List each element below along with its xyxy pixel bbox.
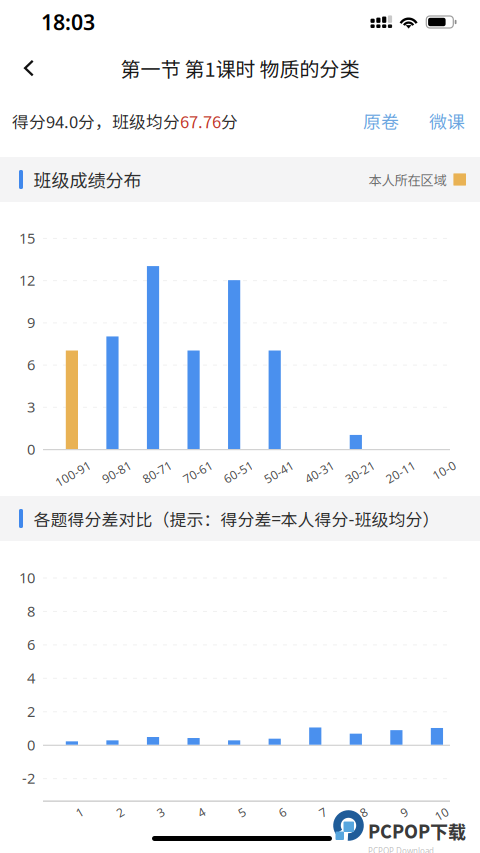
staticText: 0 [27, 439, 35, 459]
staticText: 20-11 [385, 467, 417, 483]
staticText: 70-61 [183, 467, 215, 483]
staticText: 6 [27, 355, 35, 374]
staticText: 50-41 [264, 467, 296, 483]
staticText: PCPOP Download [368, 846, 434, 853]
staticText: 微课 [429, 108, 465, 134]
staticText: PCPOP下载 [368, 817, 466, 844]
staticText: 9 [27, 313, 35, 332]
button[interactable]: 微课 [429, 109, 465, 133]
staticText: 4 [27, 668, 35, 688]
staticText: 80-71 [142, 467, 174, 483]
staticText: 67.76 [180, 109, 221, 133]
staticText: 3 [158, 807, 165, 823]
staticText: 30-21 [345, 467, 377, 483]
staticText: 3 [27, 397, 35, 417]
staticText: 6 [280, 807, 287, 823]
staticText: 90-81 [101, 467, 133, 483]
staticText: 分 [221, 109, 238, 133]
staticText: 本人所在区域 [368, 170, 446, 189]
staticText: 40-31 [304, 467, 336, 483]
staticText: 第一节 第1课时 物质的分类 [120, 53, 359, 82]
staticText: 各题得分差对比（提示：得分差=本人得分-班级均分） [33, 506, 439, 531]
staticText: 班级均分 [112, 109, 180, 133]
staticText: 9 [401, 807, 408, 823]
staticText: 10 [435, 807, 449, 823]
staticText: 0 [27, 735, 35, 754]
staticText: 10-0 [433, 467, 458, 483]
staticText: 原卷 [363, 108, 399, 134]
staticText: 100-91 [54, 467, 93, 483]
button[interactable]: 原卷 [363, 109, 399, 133]
staticText: 8 [27, 601, 35, 621]
staticText: 7 [320, 807, 327, 823]
staticText: 15 [19, 228, 35, 248]
staticText: 4 [199, 807, 206, 823]
staticText: 10 [19, 568, 35, 587]
staticText: 2 [27, 701, 35, 721]
staticText: 18:03 [41, 8, 95, 36]
staticText: 班级成绩分布 [33, 166, 141, 193]
staticText: 6 [27, 635, 35, 654]
staticText: 2 [117, 807, 124, 823]
staticText: -2 [22, 768, 35, 788]
staticText: 5 [239, 807, 246, 823]
staticText: 60-51 [223, 467, 255, 483]
button[interactable]: Back [6, 46, 52, 90]
staticText: 1 [77, 807, 84, 823]
staticText: 得分94.0分， [12, 109, 112, 133]
staticText: 12 [19, 270, 35, 290]
staticText: 8 [361, 807, 368, 823]
